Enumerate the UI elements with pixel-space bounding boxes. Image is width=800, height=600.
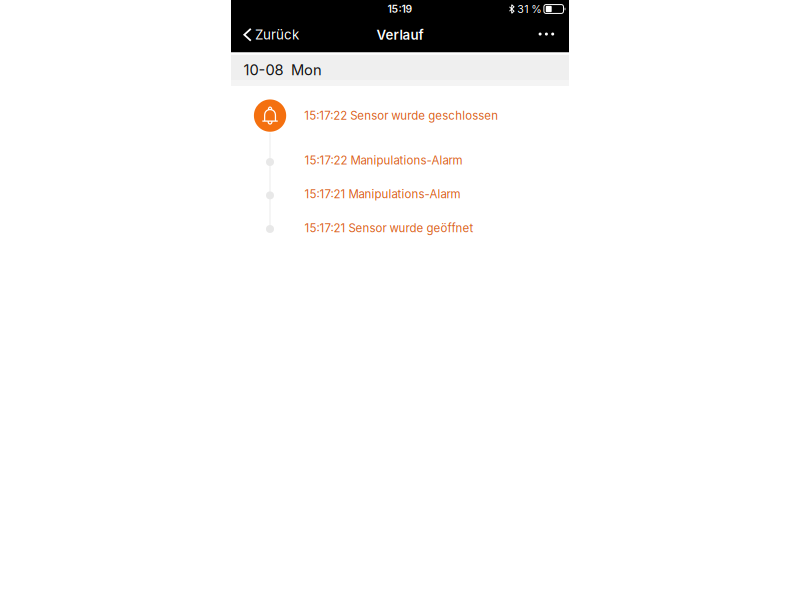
staticText: 15:17:22 Sensor wurde geschlossen — [304, 109, 498, 123]
staticText: 31 % — [517, 2, 541, 15]
staticText: 15:19 — [387, 3, 412, 15]
button[interactable]: 15:17:21 Manipulations-Alarm — [231, 177, 569, 210]
staticText: 15:17:21 Sensor wurde geöffnet — [305, 221, 474, 235]
button[interactable]: 15:17:22 Sensor wurde geschlossen — [231, 98, 569, 134]
staticText: Zurück — [255, 27, 299, 43]
staticText: Verlauf — [376, 27, 423, 43]
staticText: Mon — [291, 61, 322, 79]
staticText: 15:17:21 Manipulations-Alarm — [305, 187, 461, 201]
button[interactable]: 15:17:22 Manipulations-Alarm — [231, 143, 569, 177]
staticText: 10-08 — [243, 61, 283, 79]
button[interactable]: 15:17:21 Sensor wurde geöffnet — [231, 210, 569, 244]
button[interactable]: Zurück — [231, 18, 308, 52]
button[interactable]: More options — [527, 18, 569, 52]
staticText: 15:17:22 Manipulations-Alarm — [305, 153, 463, 167]
